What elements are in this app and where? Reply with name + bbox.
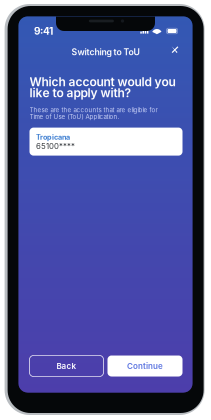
staticText: 65100**** [36,141,75,151]
button[interactable]: Close [169,45,183,59]
staticText: Continue [127,361,163,371]
staticText: These are the accounts that are eligible… [29,106,157,114]
staticText: Which account would you [29,75,175,89]
button[interactable]: Tropicana [29,128,182,156]
button[interactable]: Continue [107,355,182,376]
staticText: Switching to ToU [71,47,139,57]
staticText: Back [56,361,76,371]
staticText: Time of Use (ToU) Application. [29,113,119,120]
button[interactable]: Back [29,355,103,376]
staticText: Tropicana [36,133,70,141]
staticText: like to apply with? [29,86,131,100]
staticText: 9:41 [34,25,53,37]
